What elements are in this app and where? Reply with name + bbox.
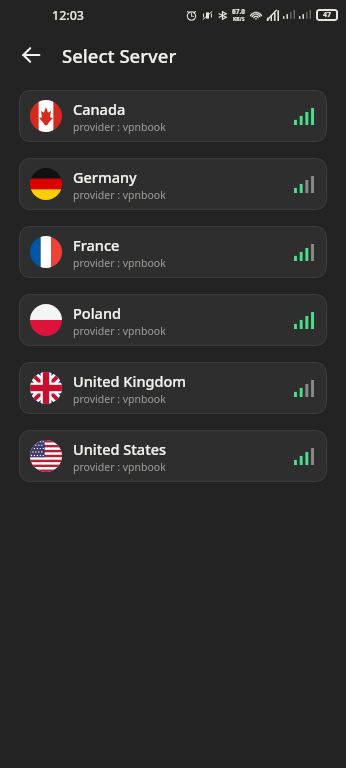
- button[interactable]: Poland: [19, 294, 327, 346]
- staticText: provider : vpnbook: [73, 324, 166, 338]
- button[interactable]: Canada: [19, 90, 327, 142]
- staticText: provider : vpnbook: [73, 120, 166, 134]
- staticText: 12:03: [52, 7, 85, 24]
- staticText: provider : vpnbook: [73, 188, 166, 202]
- staticText: provider : vpnbook: [73, 460, 166, 474]
- button[interactable]: United Kingdom: [19, 362, 327, 414]
- button[interactable]: France: [19, 226, 327, 278]
- button[interactable]: Back: [10, 34, 52, 76]
- staticText: KB/S: [233, 16, 245, 23]
- staticText: United Kingdom: [73, 371, 187, 391]
- staticText: Canada: [73, 99, 126, 119]
- staticText: Select Server: [62, 43, 177, 68]
- staticText: Germany: [73, 167, 137, 187]
- staticText: 67.0: [232, 7, 245, 16]
- button[interactable]: United States: [19, 430, 327, 482]
- staticText: United States: [73, 439, 167, 459]
- staticText: provider : vpnbook: [73, 256, 166, 270]
- staticText: France: [73, 235, 120, 255]
- button[interactable]: Germany: [19, 158, 327, 210]
- staticText: provider : vpnbook: [73, 392, 166, 406]
- staticText: Poland: [73, 303, 121, 323]
- staticText: 47: [323, 10, 332, 20]
